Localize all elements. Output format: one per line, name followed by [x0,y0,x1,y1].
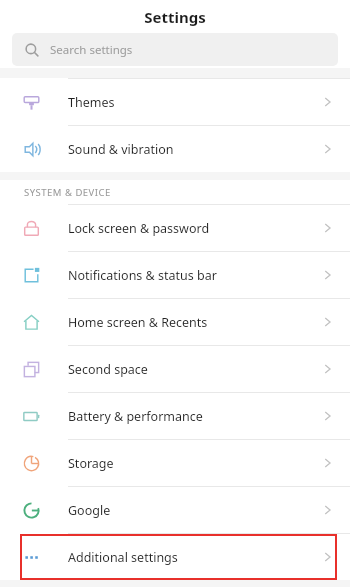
staticText: Sound & vibration [68,141,174,158]
button[interactable]: Additional settings [0,534,350,580]
staticText: Notifications & status bar [68,267,217,284]
staticText: SYSTEM & DEVICE [24,186,111,199]
button[interactable]: Battery & performance [0,393,350,439]
staticText: Themes [68,94,115,111]
button[interactable]: Search settings [12,33,338,66]
staticText: Additional settings [68,549,178,566]
button[interactable]: Google [0,487,350,533]
button[interactable]: Lock screen & password [0,205,350,251]
button[interactable]: Notifications & status bar [0,252,350,298]
staticText: Settings [144,7,206,27]
button[interactable]: Sound & vibration [0,126,350,172]
staticText: Storage [68,455,114,472]
staticText: Lock screen & password [68,220,210,237]
button[interactable]: Home screen & Recents [0,299,350,345]
button[interactable]: Storage [0,440,350,486]
staticText: Battery & performance [68,408,203,425]
staticText: Search settings [50,42,133,58]
staticText: Second space [68,361,148,378]
button[interactable]: Second space [0,346,350,392]
staticText: Google [68,502,111,519]
staticText: Home screen & Recents [68,314,208,331]
button[interactable]: Themes [0,79,350,125]
